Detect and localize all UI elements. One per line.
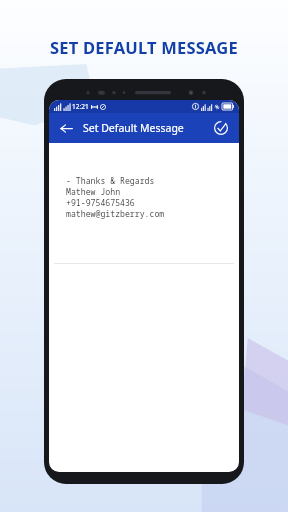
staticText: mathew@gitzberry.com: [66, 208, 165, 219]
staticText: Set Default Message: [83, 121, 184, 135]
staticText: 12:21: [72, 102, 89, 111]
button[interactable]: - Thanks & Regards: [54, 147, 234, 264]
staticText: SET DEFAULT MESSAGE: [0, 36, 288, 58]
staticText: +91-9754675436: [66, 197, 135, 208]
button[interactable]: Save: [211, 118, 231, 138]
staticText: - Thanks & Regards: [66, 175, 155, 186]
button[interactable]: Back: [57, 119, 75, 137]
staticText: Mathew John: [66, 186, 121, 197]
